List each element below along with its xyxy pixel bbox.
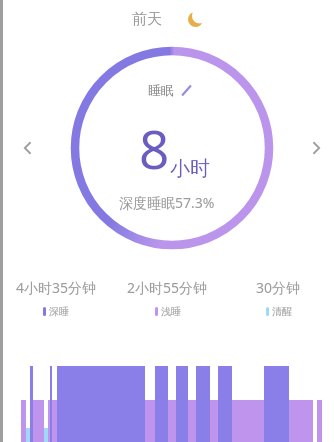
staticText: 睡眠 (148, 82, 174, 98)
staticText: 小时 (170, 156, 210, 181)
staticText: 4小时35分钟 (16, 278, 97, 297)
staticText: 2小时55分钟 (127, 278, 208, 297)
staticText: 30分钟 (256, 278, 301, 297)
button[interactable]: 2小时55分钟 (112, 278, 223, 318)
button[interactable]: 睡眠 (148, 82, 192, 98)
staticText: 深睡 (49, 305, 69, 318)
staticText: 深度睡眠57.3% (119, 193, 215, 212)
staticText: 浅睡 (161, 305, 181, 318)
staticText: 8 (139, 112, 170, 184)
button[interactable]: 前天 (126, 6, 209, 33)
button[interactable]: Previous day (16, 136, 40, 160)
button[interactable]: 4小时35分钟 (0, 278, 112, 318)
button[interactable]: Next day (304, 136, 328, 160)
staticText: 前天 (132, 10, 162, 29)
staticText: 清醒 (272, 305, 292, 318)
button[interactable]: 30分钟 (223, 278, 334, 318)
